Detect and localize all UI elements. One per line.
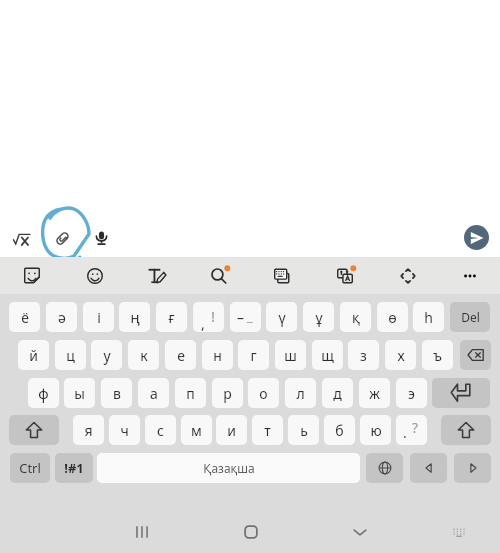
- staticText: в: [113, 384, 121, 403]
- button[interactable]: р: [212, 378, 243, 408]
- button[interactable]: Del: [450, 302, 490, 332]
- button[interactable]: –: [230, 302, 261, 332]
- staticText: Қазақша: [203, 460, 255, 476]
- staticText: ғ: [168, 308, 175, 327]
- button[interactable]: к: [128, 340, 159, 370]
- button[interactable]: Keyboard switch: [445, 518, 473, 546]
- button[interactable]: Attach: [46, 222, 78, 254]
- staticText: й: [29, 346, 38, 365]
- button[interactable]: э: [396, 378, 427, 408]
- button[interactable]: [441, 415, 491, 445]
- button[interactable]: Math input: [5, 223, 37, 255]
- button[interactable]: Home: [237, 518, 265, 546]
- button[interactable]: а: [138, 378, 169, 408]
- button[interactable]: Emoji: [79, 260, 111, 292]
- button[interactable]: Move keyboard: [392, 260, 424, 292]
- staticText: қ: [352, 308, 360, 327]
- button[interactable]: Қазақша: [97, 453, 360, 483]
- staticText: у: [103, 346, 111, 365]
- button[interactable]: о: [248, 378, 279, 408]
- button[interactable]: ұ: [303, 302, 334, 332]
- button[interactable]: п: [175, 378, 206, 408]
- button[interactable]: ү: [266, 302, 297, 332]
- button[interactable]: ң: [119, 302, 150, 332]
- button[interactable]: д: [322, 378, 353, 408]
- button[interactable]: л: [285, 378, 316, 408]
- button[interactable]: н: [202, 340, 233, 370]
- staticText: !#1: [64, 459, 84, 477]
- button[interactable]: ,: [193, 302, 224, 332]
- button[interactable]: More options: [454, 260, 486, 292]
- button[interactable]: ц: [55, 340, 86, 370]
- button[interactable]: ь: [288, 415, 319, 445]
- staticText: ,: [201, 314, 205, 332]
- button[interactable]: [460, 340, 491, 370]
- button[interactable]: Clipboard: [266, 260, 298, 292]
- button[interactable]: й: [18, 340, 49, 370]
- staticText: ә: [58, 308, 66, 327]
- staticText: ы: [74, 384, 85, 403]
- button[interactable]: ж: [359, 378, 390, 408]
- button[interactable]: с: [145, 415, 176, 445]
- staticText: ъ: [433, 346, 442, 365]
- button[interactable]: г: [238, 340, 269, 370]
- button[interactable]: я: [73, 415, 104, 445]
- staticText: з: [360, 346, 367, 365]
- button[interactable]: қ: [340, 302, 371, 332]
- button[interactable]: [432, 378, 490, 408]
- button[interactable]: [454, 453, 491, 483]
- staticText: ю: [370, 421, 382, 440]
- button[interactable]: !#1: [55, 453, 93, 483]
- button[interactable]: ә: [46, 302, 77, 332]
- button[interactable]: h: [413, 302, 444, 332]
- button[interactable]: [9, 415, 59, 445]
- button[interactable]: Translate: [329, 260, 361, 292]
- staticText: ц: [66, 346, 75, 365]
- button[interactable]: ч: [109, 415, 140, 445]
- staticText: ч: [120, 421, 129, 440]
- button[interactable]: Hide keyboard: [346, 518, 374, 546]
- staticText: ұ: [315, 308, 323, 327]
- button[interactable]: [366, 453, 403, 483]
- button[interactable]: .: [396, 415, 427, 445]
- button[interactable]: ю: [360, 415, 391, 445]
- staticText: п: [186, 384, 195, 403]
- staticText: і: [97, 308, 101, 327]
- staticText: о: [259, 384, 268, 403]
- button[interactable]: ф: [28, 378, 59, 408]
- button[interactable]: ш: [275, 340, 306, 370]
- button[interactable]: і: [83, 302, 114, 332]
- button[interactable]: и: [216, 415, 247, 445]
- button[interactable]: в: [101, 378, 132, 408]
- button[interactable]: ө: [377, 302, 408, 332]
- button[interactable]: Voice input: [85, 221, 117, 253]
- button[interactable]: [410, 453, 447, 483]
- button[interactable]: т: [252, 415, 283, 445]
- staticText: ё: [21, 308, 29, 327]
- button[interactable]: Stickers: [16, 260, 48, 292]
- button[interactable]: ё: [9, 302, 40, 332]
- button[interactable]: б: [324, 415, 355, 445]
- staticText: а: [150, 384, 158, 403]
- staticText: !: [211, 306, 216, 326]
- button[interactable]: ы: [64, 378, 95, 408]
- button[interactable]: Handwriting: [140, 260, 172, 292]
- staticText: э: [408, 384, 415, 403]
- button[interactable]: у: [91, 340, 122, 370]
- staticText: с: [157, 421, 164, 440]
- staticText: к: [140, 346, 148, 365]
- button[interactable]: х: [385, 340, 416, 370]
- button[interactable]: ғ: [156, 302, 187, 332]
- button[interactable]: Recents: [128, 518, 156, 546]
- staticText: h: [424, 308, 433, 327]
- button[interactable]: ъ: [422, 340, 453, 370]
- button[interactable]: е: [165, 340, 196, 370]
- staticText: _: [247, 307, 253, 325]
- staticText: ң: [130, 308, 140, 327]
- button[interactable]: Ctrl: [10, 453, 50, 483]
- button[interactable]: з: [348, 340, 379, 370]
- button[interactable]: Search: [203, 260, 235, 292]
- button[interactable]: м: [181, 415, 212, 445]
- button[interactable]: Send: [464, 225, 489, 250]
- button[interactable]: щ: [312, 340, 343, 370]
